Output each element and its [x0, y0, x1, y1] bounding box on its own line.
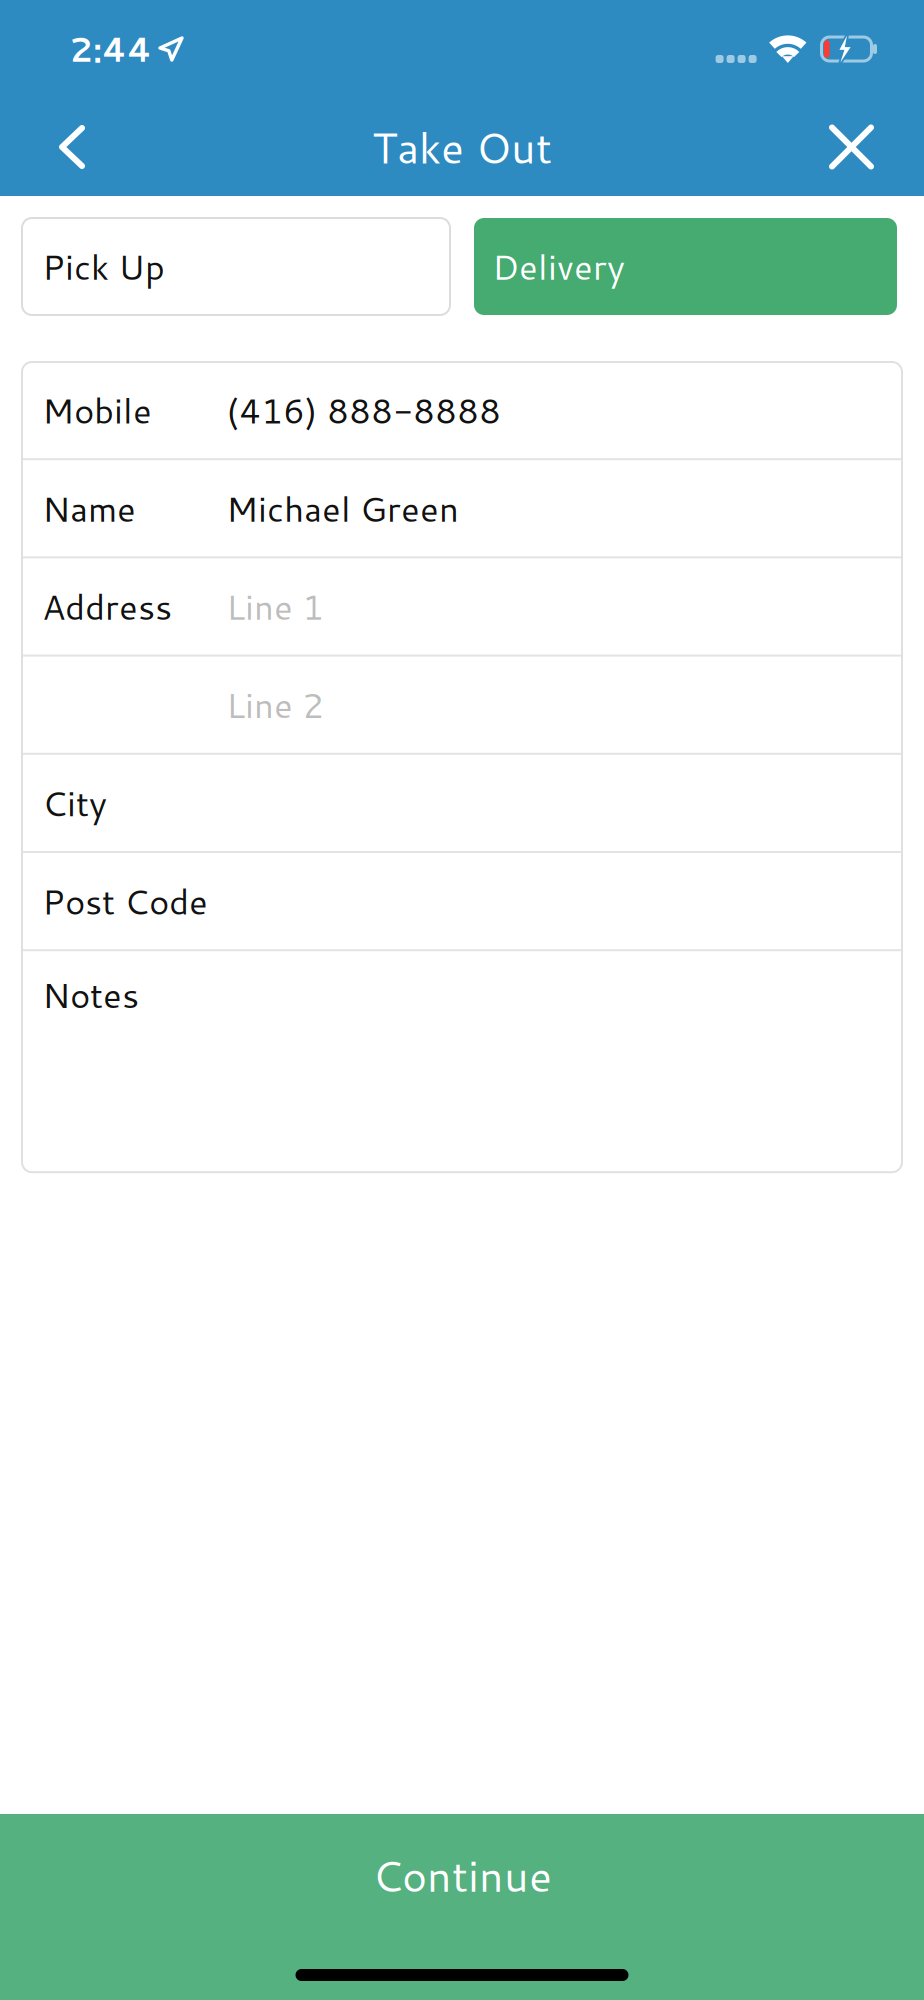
staticText: Mobile — [42, 386, 152, 435]
button[interactable]: Continue — [0, 1814, 924, 2000]
staticText: Pick Up — [42, 242, 165, 291]
staticText: Address — [42, 582, 172, 631]
button[interactable]: Back — [0, 101, 119, 193]
staticText: Continue — [372, 1845, 552, 1905]
button[interactable]: Delivery — [474, 218, 897, 315]
staticText: Line 2 — [226, 680, 324, 729]
staticText: Take Out — [372, 117, 552, 177]
staticText: (416) 888-8888 — [226, 386, 501, 435]
staticText: Delivery — [492, 242, 625, 291]
staticText: Michael Green — [226, 484, 459, 533]
staticText: Name — [42, 484, 136, 533]
staticText: City — [42, 778, 107, 827]
staticText: 2:44 — [69, 25, 152, 73]
staticText: Post Code — [42, 877, 208, 926]
staticText: Notes — [42, 970, 139, 1019]
staticText: Line 1 — [226, 582, 324, 631]
button[interactable]: Pick Up — [22, 218, 450, 315]
button[interactable]: Close — [795, 100, 924, 193]
